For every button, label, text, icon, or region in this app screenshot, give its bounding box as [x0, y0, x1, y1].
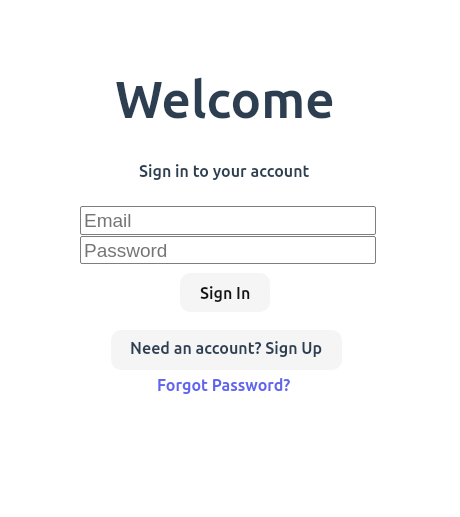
button[interactable]: Email	[80, 206, 376, 235]
button[interactable]: Sign In	[180, 273, 270, 312]
button[interactable]: Need an account? Sign Up	[111, 330, 342, 370]
staticText: Forgot Password?	[157, 376, 291, 394]
staticText: Welcome	[115, 70, 335, 127]
staticText: Password	[84, 240, 168, 261]
staticText: Email	[84, 210, 132, 231]
staticText: Need an account? Sign Up	[130, 339, 323, 357]
button[interactable]: Password	[80, 236, 376, 264]
staticText: Sign in to your account	[139, 162, 310, 180]
button[interactable]: Forgot Password?	[157, 376, 291, 394]
staticText: Sign In	[200, 284, 251, 302]
